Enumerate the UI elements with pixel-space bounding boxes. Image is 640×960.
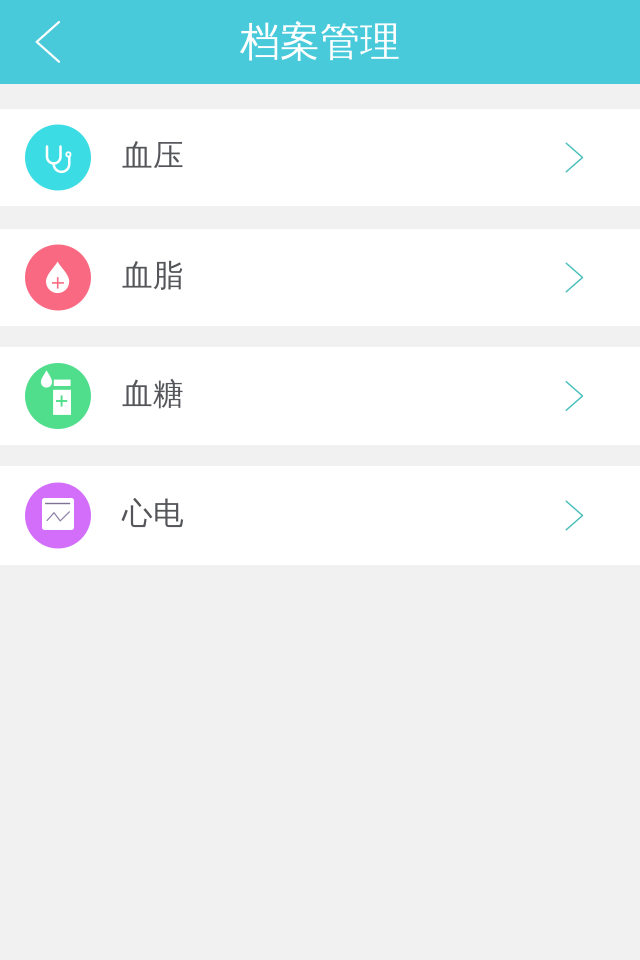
button[interactable]: 血脂 [0,229,640,326]
button[interactable]: Back [0,0,96,84]
button[interactable]: 血压 [0,109,640,206]
button[interactable]: 心电 [0,466,640,565]
staticText: 档案管理 [240,17,400,66]
staticText: 血糖 [122,375,184,413]
button[interactable]: 血糖 [0,347,640,445]
staticText: 心电 [122,495,184,532]
staticText: 血压 [122,137,184,174]
staticText: 血脂 [122,257,184,294]
